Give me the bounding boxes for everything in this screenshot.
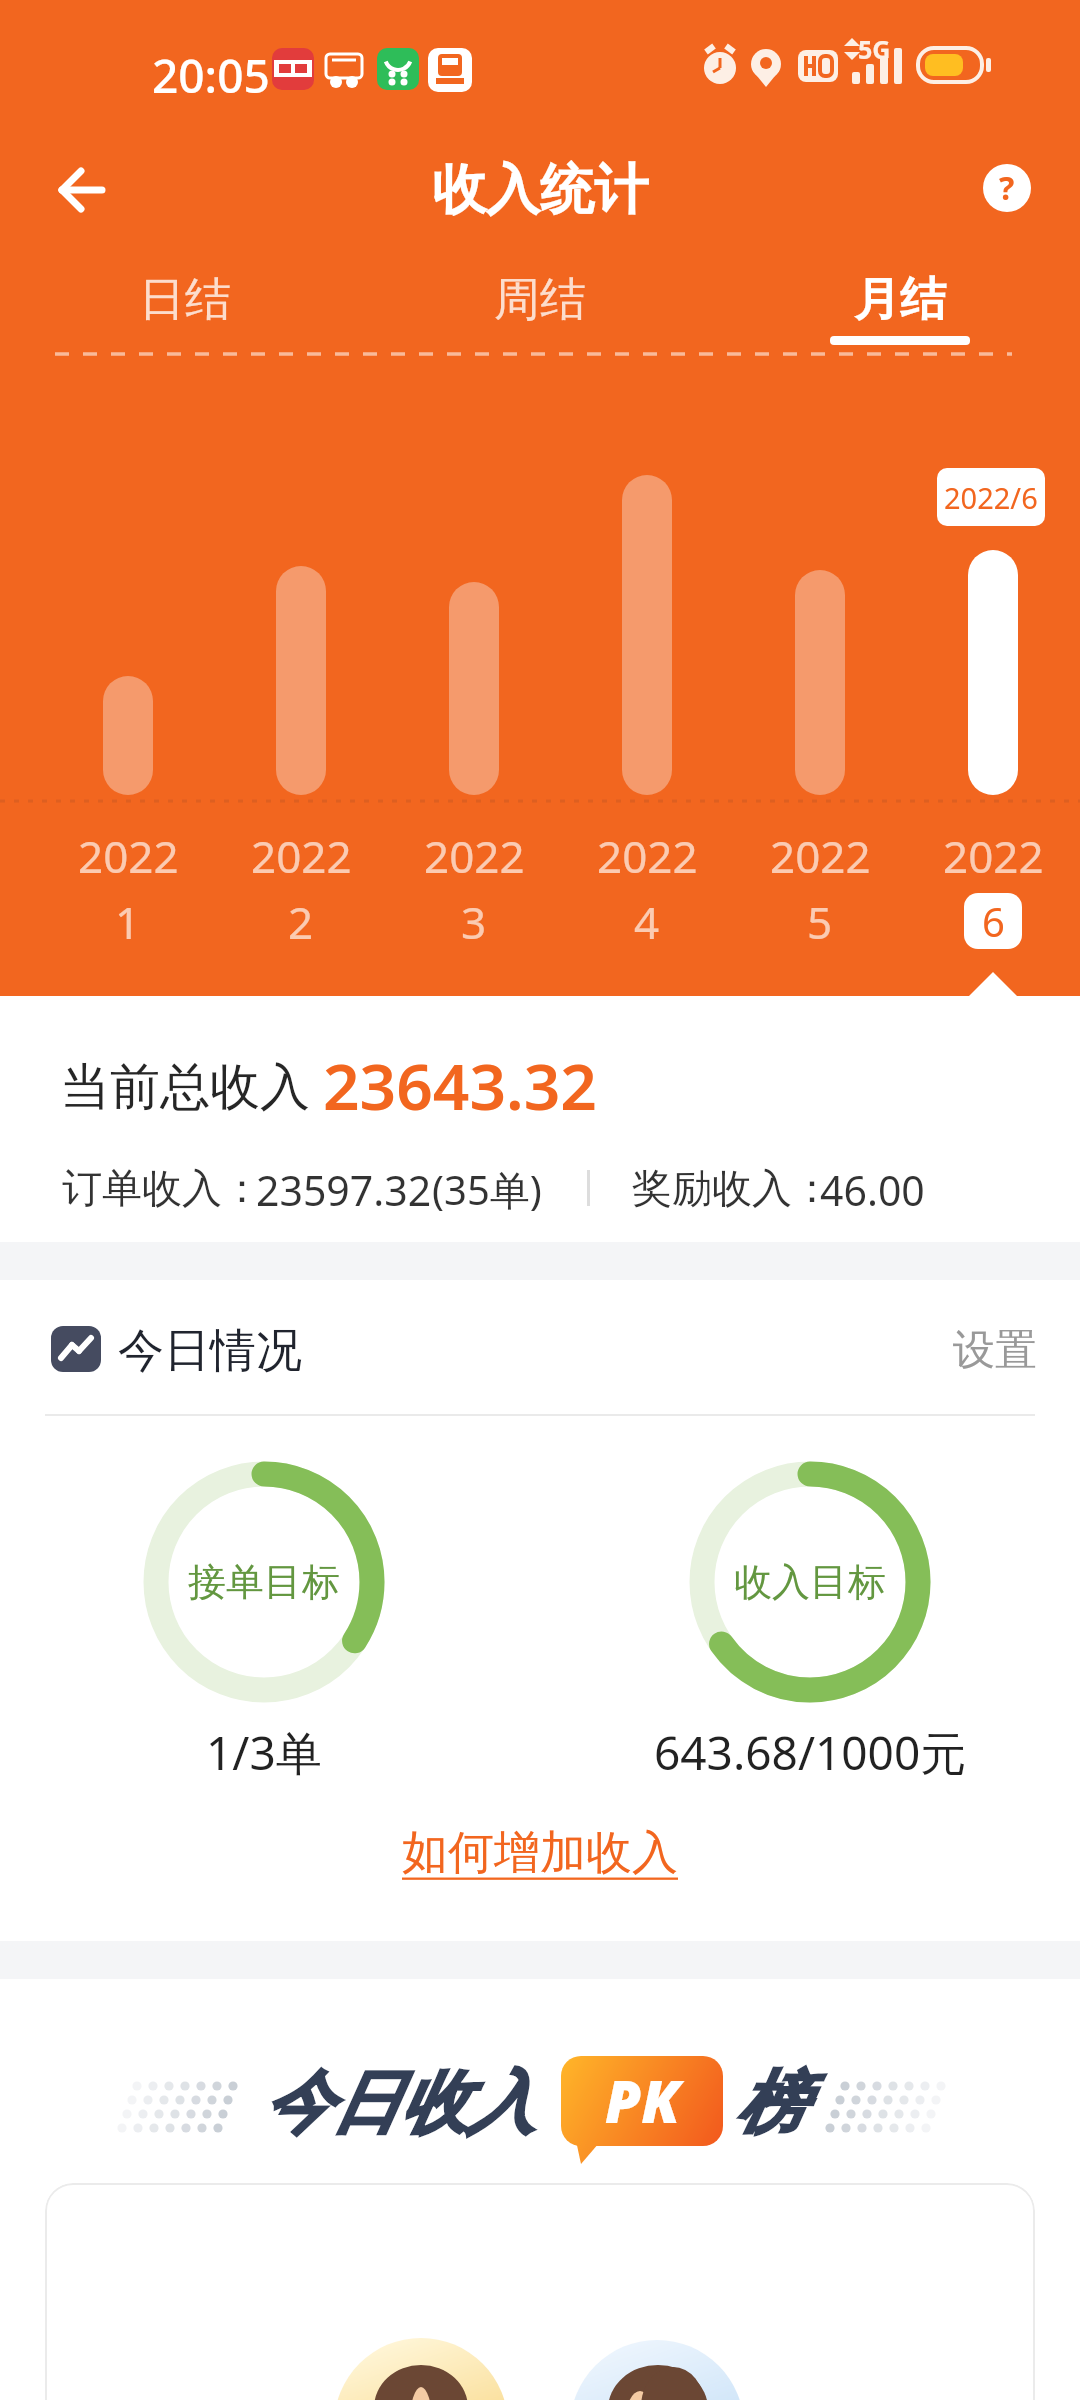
button[interactable]: PK — [561, 2055, 723, 2145]
staticText: 2022 — [78, 826, 179, 882]
button[interactable]: 周结 — [460, 268, 620, 332]
button[interactable]: 设置 — [945, 1320, 1045, 1380]
staticText: 如何增加收入 — [402, 1824, 678, 1882]
button[interactable] — [45, 2183, 1035, 2400]
button[interactable]: ? — [983, 164, 1031, 212]
staticText: 2022 — [251, 826, 352, 882]
button[interactable]: 月结 — [820, 268, 980, 332]
staticText: 2022 — [424, 826, 525, 882]
staticText: 今日情况 — [118, 1322, 302, 1380]
staticText: 3 — [461, 892, 487, 948]
staticText: 1 — [115, 892, 141, 948]
staticText: 5G — [858, 32, 891, 66]
staticText: 今日收入 — [263, 2061, 535, 2147]
staticText: 643.68/1000元 — [654, 1721, 967, 1781]
button[interactable]: 如何增加收入 — [290, 1821, 790, 1885]
staticText: 收入目标 — [734, 1558, 886, 1606]
staticText: 5 — [807, 892, 833, 948]
staticText: 订单收入： — [62, 1163, 262, 1213]
staticText: (35单) — [432, 1162, 542, 1214]
staticText: ? — [999, 166, 1015, 210]
staticText: 2022 — [597, 826, 698, 882]
staticText: 当前总收入 — [60, 1051, 323, 1119]
staticText: 周结 — [494, 271, 586, 329]
staticText: 2 — [288, 892, 314, 948]
staticText: 月结 — [854, 271, 946, 329]
staticText: 4 — [634, 892, 660, 948]
staticText: 1/3单 — [206, 1721, 322, 1781]
staticText: 20:05 — [152, 44, 270, 107]
staticText: 设置 — [953, 1324, 1037, 1377]
staticText: 23597.32 — [256, 1162, 432, 1214]
staticText: 接单目标 — [188, 1558, 340, 1606]
staticText: 榜 — [736, 2061, 804, 2147]
button[interactable]: 6 — [964, 893, 1022, 949]
staticText: 2022 — [943, 826, 1044, 882]
button[interactable] — [40, 150, 120, 230]
staticText: 2022/6 — [944, 478, 1038, 517]
staticText: 23643.32 — [323, 1042, 597, 1129]
staticText: 2022 — [770, 826, 871, 882]
staticText: 日结 — [139, 271, 231, 329]
staticText: 奖励收入： — [632, 1163, 832, 1213]
staticText: 46.00 — [820, 1162, 925, 1214]
button[interactable]: 日结 — [105, 268, 265, 332]
staticText: 收入统计 — [432, 156, 648, 224]
staticText: 6 — [982, 894, 1005, 948]
staticText: PK — [605, 2061, 680, 2140]
